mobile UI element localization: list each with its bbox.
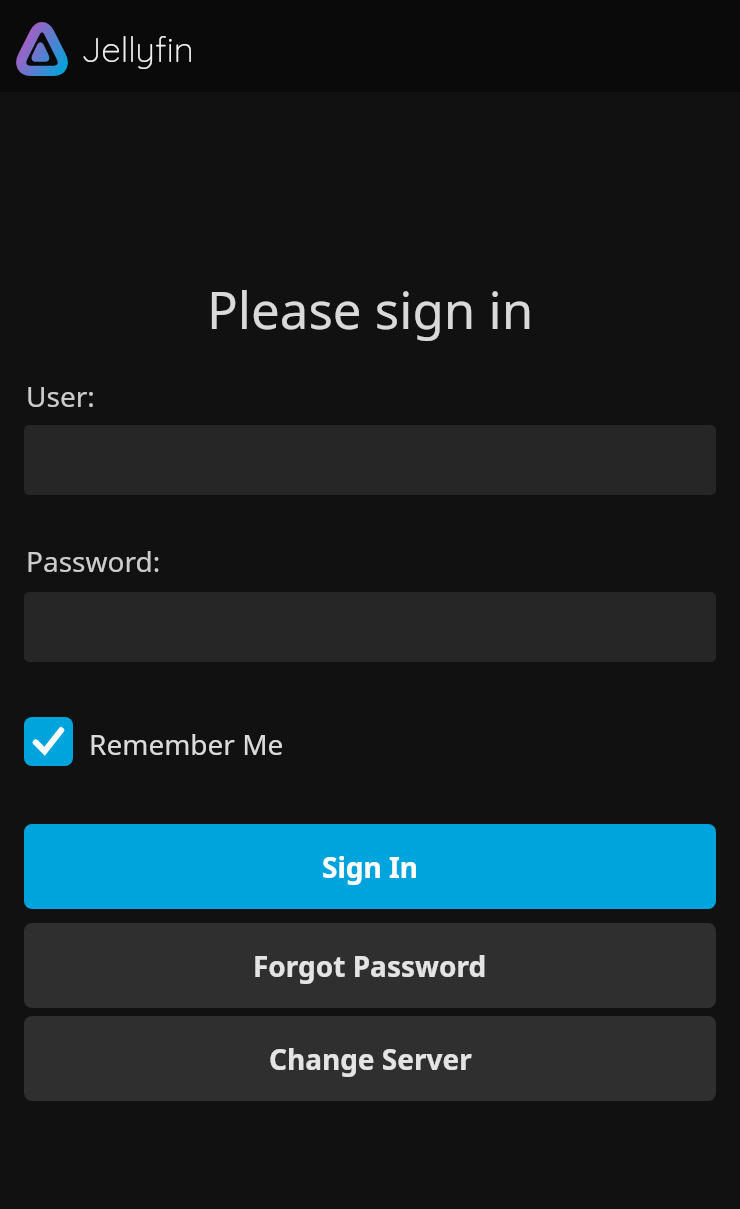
staticText: Please sign in: [207, 274, 534, 343]
button[interactable]: Remember Me: [24, 717, 284, 766]
staticText: Jellyfin: [81, 27, 194, 71]
staticText: Remember Me: [89, 725, 284, 763]
button[interactable]: Forgot Password: [24, 923, 716, 1008]
staticText: Forgot Password: [253, 947, 487, 985]
staticText: Change Server: [269, 1040, 472, 1078]
staticText: Sign In: [322, 848, 419, 886]
staticText: Password:: [26, 542, 161, 580]
button[interactable]: Sign In: [24, 824, 716, 909]
button[interactable]: Change Server: [24, 1016, 716, 1101]
staticText: User:: [26, 377, 95, 415]
